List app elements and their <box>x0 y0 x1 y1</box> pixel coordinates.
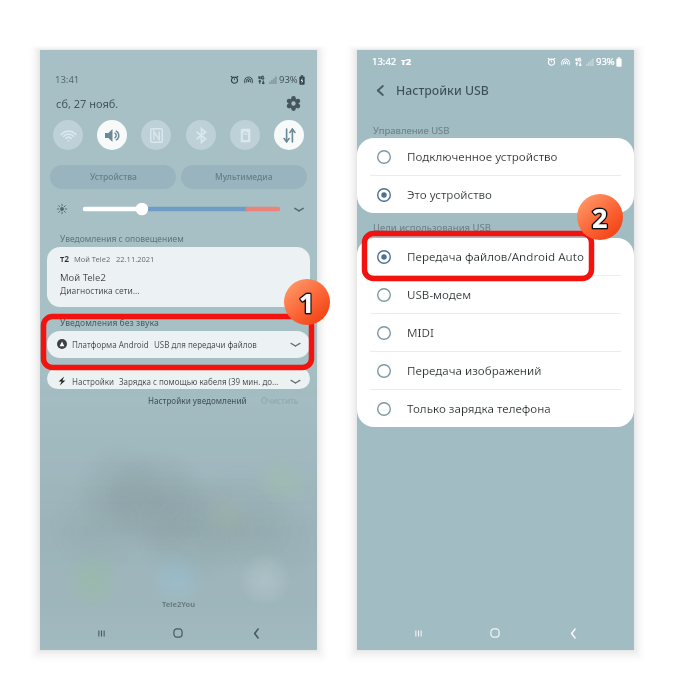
staticText: Диагностика сети… <box>60 285 140 297</box>
button[interactable]: Передача файлов/Android Auto <box>357 238 634 275</box>
staticText: Уведомления с оповещением <box>60 233 184 245</box>
button[interactable]: Недавние <box>83 620 119 646</box>
staticText: 22.11.2021 <box>116 254 155 264</box>
staticText: Настройки <box>72 376 114 387</box>
staticText: 2 <box>592 199 608 236</box>
button[interactable]: Bluetooth <box>186 120 216 150</box>
button[interactable]: Мобильные данные <box>274 120 304 150</box>
staticText: 93% <box>596 55 615 68</box>
staticText: USB для передачи файлов <box>154 339 257 350</box>
staticText: Настройки USB <box>396 82 489 99</box>
button[interactable]: Недавние <box>400 620 436 646</box>
staticText: Зарядка с помощью кабеля (39 мин. до… <box>119 376 279 387</box>
staticText: Платформа Android <box>72 339 149 350</box>
button[interactable]: Это устройство <box>357 176 634 213</box>
staticText: 13:42 <box>372 55 397 68</box>
staticText: Управление USB <box>373 124 450 137</box>
staticText: 93% <box>279 73 298 86</box>
button[interactable]: Платформа Android <box>47 331 310 358</box>
staticText: Подключенное устройство <box>407 149 558 165</box>
staticText: сб, 27 нояб. <box>56 96 119 111</box>
button[interactable]: Настройки уведомлений <box>148 395 247 406</box>
staticText: Это устройство <box>407 187 493 203</box>
button[interactable]: Главный экран <box>160 620 196 646</box>
staticText: Передача файлов/Android Auto <box>407 249 584 265</box>
button[interactable]: Передача изображений <box>357 352 634 389</box>
button[interactable]: Подключенное устройство <box>357 138 634 175</box>
button[interactable]: Wi-Fi <box>53 120 83 150</box>
button[interactable]: USB-модем <box>357 276 634 313</box>
button[interactable]: Развернуть <box>289 200 309 218</box>
staticText: Мой Tele2 <box>60 271 106 284</box>
staticText: MIDI <box>407 325 434 341</box>
staticText: Уведомления без звука <box>60 317 159 329</box>
staticText: т2 <box>60 253 70 265</box>
staticText: 1 <box>299 284 315 321</box>
staticText: USB-модем <box>407 287 472 303</box>
staticText: т2 <box>401 55 412 68</box>
staticText: 13:41 <box>55 73 80 86</box>
staticText: Мой Tele2 <box>74 254 111 264</box>
button[interactable]: Блокировка <box>230 120 260 150</box>
button[interactable]: Назад <box>555 620 591 646</box>
button[interactable]: Главный экран <box>477 620 513 646</box>
button[interactable]: Настройки <box>281 91 305 115</box>
staticText: Мультимедиа <box>215 171 273 183</box>
staticText: 1 <box>299 284 315 321</box>
button[interactable]: Звук <box>97 120 127 150</box>
staticText: Tele2You <box>162 599 196 609</box>
button[interactable]: Назад <box>238 620 274 646</box>
button[interactable]: MIDI <box>357 314 634 351</box>
staticText: Устройства <box>90 171 137 183</box>
button[interactable]: NFC <box>141 120 171 150</box>
button[interactable]: Настройки <box>47 368 310 389</box>
staticText: Цели использования USB <box>373 221 491 234</box>
staticText: 2 <box>592 199 608 236</box>
button[interactable]: Устройства <box>50 165 176 189</box>
button[interactable]: Очистить <box>261 395 299 406</box>
staticText: Передача изображений <box>407 363 542 379</box>
button[interactable]: Назад <box>369 79 391 101</box>
button[interactable]: Только зарядка телефона <box>357 390 634 427</box>
button[interactable]: Мультимедиа <box>181 165 307 189</box>
staticText: Только зарядка телефона <box>407 401 551 417</box>
button[interactable]: т2 <box>47 247 310 307</box>
